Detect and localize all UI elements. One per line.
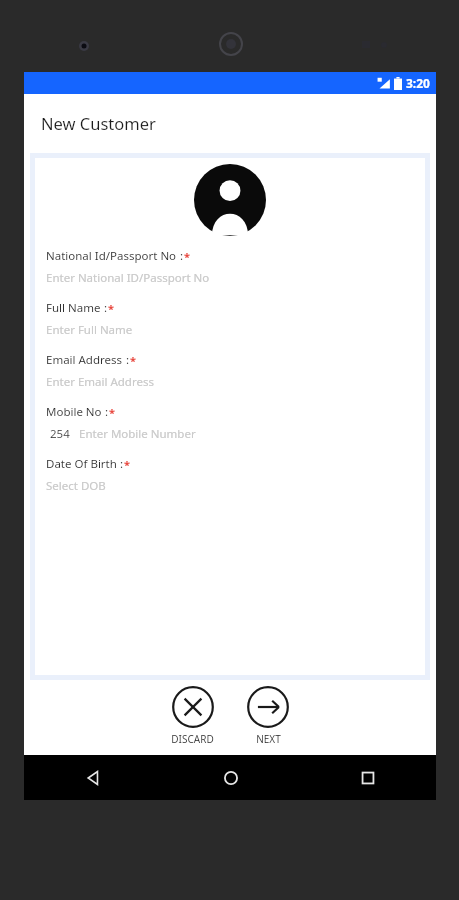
staticText: * xyxy=(130,353,136,368)
button[interactable]: Email Address xyxy=(46,352,414,404)
staticText: 3:20 xyxy=(406,75,430,91)
staticText: Enter Mobile Number xyxy=(79,426,196,442)
staticText: : xyxy=(123,352,130,368)
staticText: Enter National ID/Passport No xyxy=(46,270,210,286)
staticText: * xyxy=(124,457,130,472)
staticText: * xyxy=(109,405,115,420)
button[interactable]: Date Of Birth xyxy=(46,456,414,508)
button[interactable]: NEXT xyxy=(243,683,293,749)
staticText: National Id/Passport No xyxy=(46,248,177,264)
staticText: New Customer xyxy=(41,112,156,134)
staticText: * xyxy=(184,249,190,264)
button[interactable]: DISCARD xyxy=(167,683,218,749)
staticText: Mobile No xyxy=(46,404,102,420)
staticText: Email Address xyxy=(46,352,123,368)
staticText: Date Of Birth xyxy=(46,456,117,472)
staticText: Enter Email Address xyxy=(46,374,154,390)
staticText: 254 xyxy=(50,426,70,442)
button[interactable]: National Id/Passport No xyxy=(46,248,414,300)
staticText: * xyxy=(108,301,114,316)
staticText: NEXT xyxy=(256,732,281,746)
button[interactable]: Home xyxy=(162,755,299,800)
staticText: : xyxy=(177,248,184,264)
button[interactable]: Recent apps xyxy=(299,755,436,800)
staticText: Select DOB xyxy=(46,478,106,494)
button[interactable]: Full Name xyxy=(46,300,414,352)
staticText: : xyxy=(101,300,108,316)
staticText: DISCARD xyxy=(171,732,214,746)
staticText: : xyxy=(117,456,124,472)
staticText: Full Name xyxy=(46,300,101,316)
button[interactable]: Mobile No xyxy=(46,404,414,456)
staticText: : xyxy=(102,404,109,420)
button[interactable]: Back xyxy=(24,755,162,800)
staticText: Enter Full Name xyxy=(46,322,133,338)
